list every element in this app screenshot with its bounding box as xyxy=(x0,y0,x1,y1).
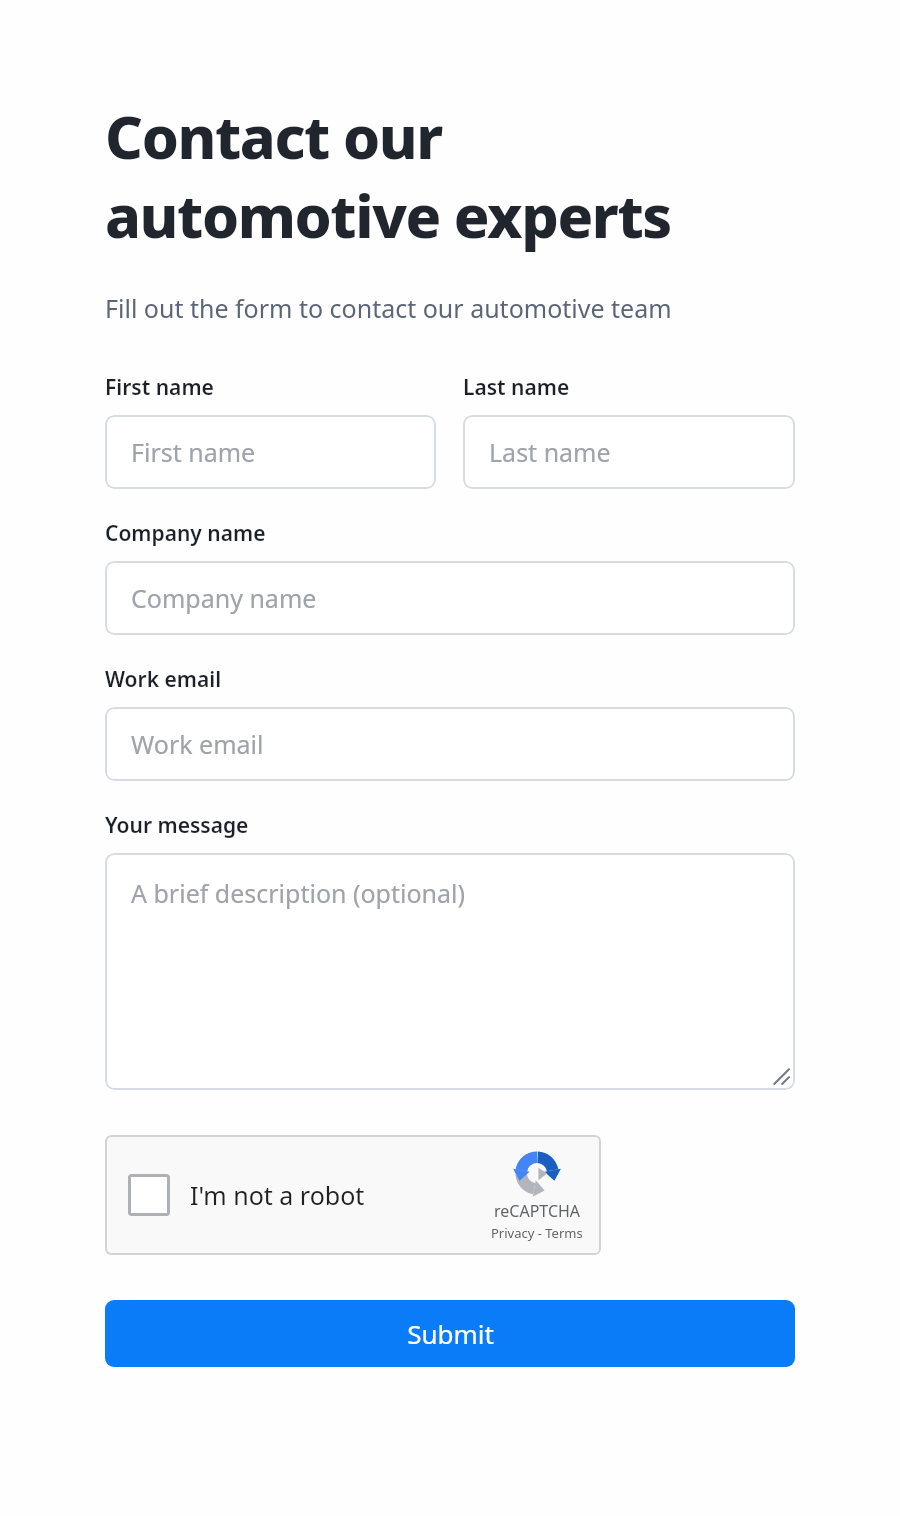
button[interactable]: Company name xyxy=(105,561,795,635)
button[interactable]: A brief description (optional) xyxy=(105,853,795,1090)
button[interactable]: I'm not a robot checkbox xyxy=(128,1174,170,1216)
staticText: Company name xyxy=(131,581,317,615)
button[interactable]: Submit xyxy=(105,1300,795,1367)
staticText: Submit xyxy=(407,1316,494,1351)
staticText: First name xyxy=(105,373,214,402)
staticText: A brief description (optional) xyxy=(131,876,466,910)
staticText: Fill out the form to contact our automot… xyxy=(105,291,672,325)
staticText: Work email xyxy=(105,665,222,694)
staticText: Last name xyxy=(489,435,611,469)
staticText: Contact our automotive experts xyxy=(105,96,671,255)
button[interactable]: I'm not a robot checkbox xyxy=(105,1135,601,1255)
button[interactable]: Last name xyxy=(463,415,795,489)
staticText: Work email xyxy=(131,727,264,761)
button[interactable]: Work email xyxy=(105,707,795,781)
staticText: Privacy - Terms xyxy=(491,1224,583,1242)
staticText: Company name xyxy=(105,519,266,548)
staticText: Your message xyxy=(105,811,249,840)
button[interactable]: First name xyxy=(105,415,436,489)
staticText: Last name xyxy=(463,373,570,402)
staticText: reCAPTCHA xyxy=(494,1200,581,1222)
staticText: First name xyxy=(131,435,256,469)
staticText: I'm not a robot xyxy=(190,1178,365,1212)
